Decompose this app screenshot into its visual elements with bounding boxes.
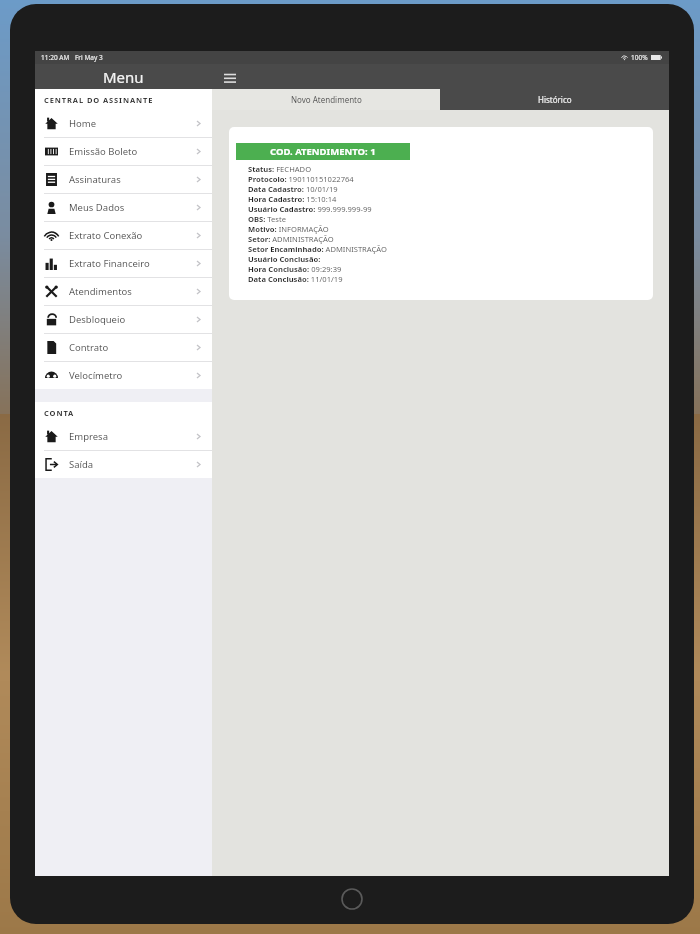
staticText: CENTRAL DO ASSINANTE [44,95,154,105]
staticText: Desbloqueio [69,313,126,326]
staticText: Protocolo: 190110151022764 [248,174,354,184]
staticText: Extrato Conexão [69,229,143,242]
staticText: Data Conclusão: 11/01/19 [248,274,343,284]
button[interactable]: COD. ATENDIMENTO: 1 [229,127,653,300]
staticText: Setor Encaminhado: ADMINISTRAÇÃO [248,244,387,254]
staticText: Setor: ADMINISTRAÇÃO [248,234,334,244]
button[interactable]: Meus Dados [35,193,212,221]
staticText: Motivo: INFORMAÇÃO [248,224,329,234]
staticText: CONTA [44,408,75,418]
staticText: Saída [69,458,94,471]
button[interactable]: Saída [35,450,212,478]
button[interactable]: Extrato Financeiro [35,249,212,277]
button[interactable]: Menu [222,69,238,85]
button[interactable]: Novo Atendimento [212,89,440,110]
staticText: 11:20 AM [41,53,70,62]
staticText: Contrato [69,341,109,354]
staticText: Novo Atendimento [291,94,362,105]
staticText: OBS: Teste [248,214,286,224]
button[interactable]: Atendimentos [35,277,212,305]
staticText: Status: FECHADO [248,164,312,174]
button[interactable]: Histórico [440,89,669,110]
staticText: Meus Dados [69,201,125,214]
button[interactable]: Assinaturas [35,165,212,193]
staticText: Data Cadastro: 10/01/19 [248,184,338,194]
staticText: COD. ATENDIMENTO: 1 [270,145,376,158]
staticText: Usuário Conclusão: [248,254,321,264]
staticText: Hora Conclusão: 09:29:39 [248,264,342,274]
button[interactable]: Home [35,110,212,137]
button[interactable]: Emissão Boleto [35,137,212,165]
staticText: Atendimentos [69,285,132,298]
staticText: Usuário Cadastro: 999.999.999-99 [248,204,372,214]
staticText: Extrato Financeiro [69,257,150,270]
button[interactable]: Extrato Conexão [35,221,212,249]
button[interactable]: Home [341,888,363,910]
staticText: Empresa [69,430,108,443]
staticText: Home [69,117,97,130]
staticText: Hora Cadastro: 15:10:14 [248,194,337,204]
button[interactable]: Empresa [35,423,212,450]
button[interactable]: Desbloqueio [35,305,212,333]
staticText: Menu [103,67,144,87]
button[interactable]: Contrato [35,333,212,361]
staticText: Velocímetro [69,369,123,382]
staticText: Emissão Boleto [69,145,138,158]
staticText: Assinaturas [69,173,121,186]
staticText: 100% [631,53,648,62]
button[interactable]: Velocímetro [35,361,212,389]
staticText: Fri May 3 [75,53,103,62]
staticText: Histórico [538,94,572,105]
